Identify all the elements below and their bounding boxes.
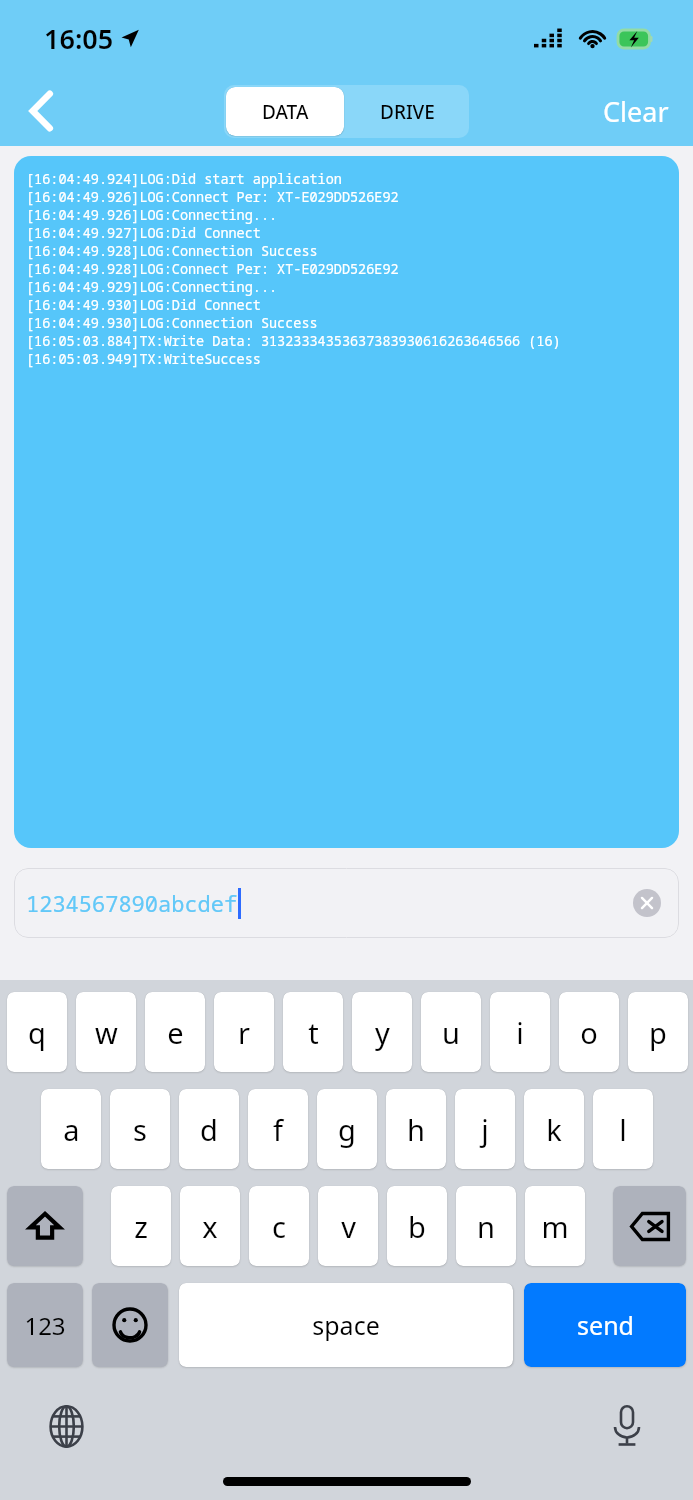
staticText: u [442, 1013, 460, 1052]
staticText: n [477, 1207, 495, 1246]
button[interactable]: d [179, 1089, 239, 1169]
staticText: r [238, 1013, 250, 1052]
button[interactable]: m [525, 1186, 585, 1266]
staticText: v [341, 1207, 356, 1246]
staticText: s [133, 1110, 147, 1149]
button[interactable]: 123 [7, 1283, 83, 1367]
button[interactable]: w [76, 992, 136, 1072]
button[interactable]: Backspace [613, 1186, 686, 1266]
staticText: a [63, 1110, 80, 1149]
staticText: d [200, 1110, 218, 1149]
staticText: m [541, 1207, 569, 1246]
button[interactable]: g [317, 1089, 377, 1169]
staticText: DATA [262, 99, 309, 125]
staticText: w [95, 1013, 118, 1052]
button[interactable]: v [318, 1186, 378, 1266]
button[interactable]: Emoji [92, 1283, 168, 1367]
staticText: [16:04:49.927]LOG:Did Connect [26, 224, 261, 242]
staticText: 1234567890abcdef [26, 888, 238, 918]
staticText: t [308, 1013, 319, 1052]
staticText: q [28, 1013, 46, 1052]
button[interactable]: u [421, 992, 481, 1072]
button[interactable]: Change keyboard language [36, 1396, 96, 1456]
staticText: p [649, 1013, 667, 1052]
button[interactable]: c [249, 1186, 309, 1266]
staticText: c [272, 1207, 286, 1246]
staticText: y [375, 1013, 390, 1052]
staticText: b [408, 1207, 426, 1246]
button[interactable]: 1234567890abcdef [14, 868, 679, 938]
staticText: space [312, 1308, 380, 1342]
button[interactable]: a [41, 1089, 101, 1169]
staticText: l [619, 1110, 627, 1149]
button[interactable]: send [524, 1283, 686, 1367]
button[interactable]: e [145, 992, 205, 1072]
staticText: [16:05:03.884]TX:Write Data: 31323334353… [26, 332, 561, 350]
button[interactable]: l [593, 1089, 653, 1169]
button[interactable]: space [179, 1283, 513, 1367]
staticText: o [580, 1013, 598, 1052]
staticText: [16:04:49.930]LOG:Did Connect [26, 296, 261, 314]
staticText: f [273, 1110, 283, 1149]
button[interactable]: o [559, 992, 619, 1072]
staticText: g [338, 1110, 356, 1149]
button[interactable]: y [352, 992, 412, 1072]
staticText: z [134, 1207, 148, 1246]
staticText: [16:04:49.924]LOG:Did start application [26, 170, 342, 188]
button[interactable]: DATA [226, 87, 344, 136]
button[interactable]: k [524, 1089, 584, 1169]
button[interactable]: b [387, 1186, 447, 1266]
button[interactable]: t [283, 992, 343, 1072]
button[interactable]: q [7, 992, 67, 1072]
staticText: [16:04:49.926]LOG:Connect Per: XT-E029DD… [26, 188, 399, 206]
button[interactable]: n [456, 1186, 516, 1266]
button[interactable]: x [180, 1186, 240, 1266]
button[interactable]: Back [12, 82, 70, 140]
button[interactable]: [16:04:49.924]LOG:Did start application [14, 156, 679, 848]
staticText: Clear [603, 93, 669, 130]
staticText: h [407, 1110, 425, 1149]
staticText: x [202, 1207, 218, 1246]
button[interactable]: h [386, 1089, 446, 1169]
staticText: [16:04:49.926]LOG:Connecting... [26, 206, 278, 224]
staticText: e [167, 1013, 184, 1052]
button[interactable]: Clear [595, 85, 677, 138]
button[interactable]: s [110, 1089, 170, 1169]
button[interactable]: p [628, 992, 688, 1072]
staticText: 123 [24, 1309, 66, 1342]
staticText: [16:05:03.949]TX:WriteSuccess [26, 350, 261, 368]
button[interactable]: DRIVE [346, 85, 469, 138]
staticText: i [516, 1013, 524, 1052]
button[interactable]: f [248, 1089, 308, 1169]
staticText: k [546, 1110, 562, 1149]
staticText: [16:04:49.928]LOG:Connection Success [26, 242, 318, 260]
staticText: [16:04:49.929]LOG:Connecting... [26, 278, 278, 296]
button[interactable]: i [490, 992, 550, 1072]
button[interactable]: z [111, 1186, 171, 1266]
staticText: 16:05 [44, 20, 114, 57]
button[interactable]: Shift [7, 1186, 83, 1266]
button[interactable]: j [455, 1089, 515, 1169]
button[interactable]: Clear text [631, 887, 663, 919]
staticText: j [481, 1110, 489, 1149]
staticText: send [577, 1308, 634, 1342]
staticText: DRIVE [380, 99, 435, 125]
staticText: [16:04:49.930]LOG:Connection Success [26, 314, 318, 332]
button[interactable]: r [214, 992, 274, 1072]
staticText: [16:04:49.928]LOG:Connect Per: XT-E029DD… [26, 260, 399, 278]
button[interactable]: Dictation [597, 1396, 657, 1456]
